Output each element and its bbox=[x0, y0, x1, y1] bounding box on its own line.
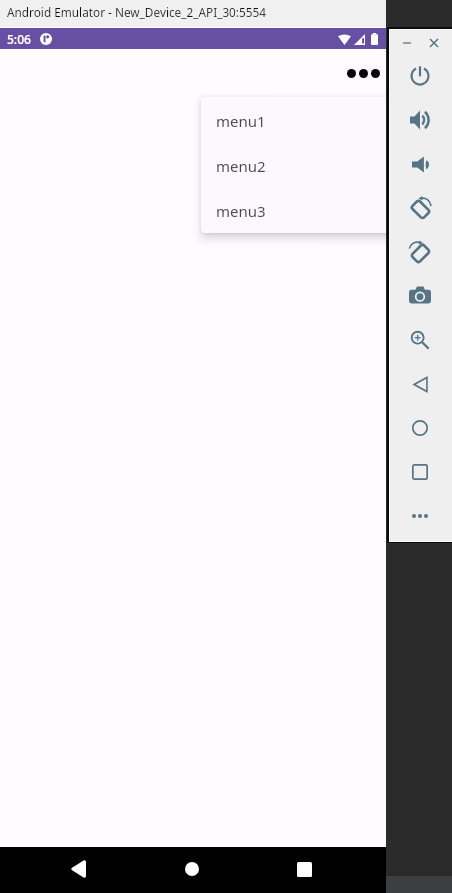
button[interactable]: Volume up bbox=[404, 104, 436, 136]
button[interactable]: Minimize bbox=[397, 33, 417, 53]
staticText: menu3 bbox=[216, 201, 266, 221]
button[interactable]: Home bbox=[174, 846, 209, 892]
button[interactable]: Home bbox=[404, 412, 436, 444]
button[interactable]: Back bbox=[404, 368, 436, 400]
button[interactable]: menu1 bbox=[201, 97, 386, 142]
button[interactable]: Back bbox=[61, 846, 96, 892]
button[interactable]: Power bbox=[404, 60, 436, 92]
button[interactable]: Zoom bbox=[404, 324, 436, 356]
staticText: menu2 bbox=[216, 156, 266, 176]
button[interactable]: Recent apps bbox=[287, 846, 321, 892]
staticText: 5:06 bbox=[7, 31, 31, 47]
staticText: menu1 bbox=[216, 111, 266, 131]
button[interactable]: Rotate left bbox=[404, 192, 436, 224]
button[interactable]: Overview bbox=[404, 456, 436, 488]
staticText: Android Emulator - New_Device_2_API_30:5… bbox=[7, 4, 267, 20]
button[interactable]: Close bbox=[424, 33, 444, 53]
button[interactable]: menu3 bbox=[201, 187, 386, 232]
button[interactable]: Rotate right bbox=[404, 236, 436, 268]
button[interactable]: Volume down bbox=[404, 148, 436, 180]
button[interactable]: menu2 bbox=[201, 142, 386, 187]
button[interactable]: More options bbox=[344, 54, 382, 92]
button[interactable]: More bbox=[404, 500, 436, 532]
button[interactable]: Screenshot bbox=[404, 280, 436, 312]
